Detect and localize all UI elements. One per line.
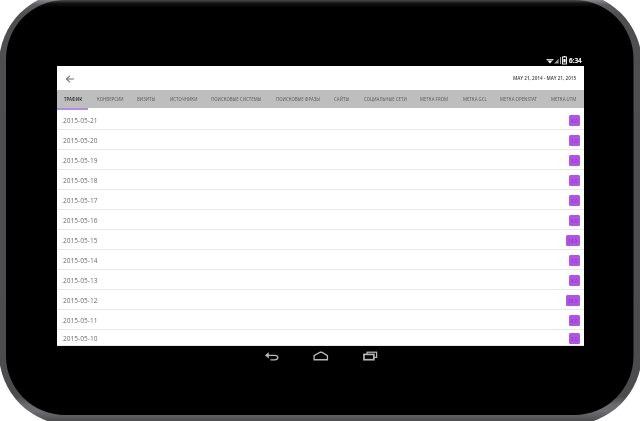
button[interactable]: МЕТКА FROM <box>414 90 455 108</box>
button[interactable]: Recent apps <box>363 351 379 361</box>
staticText: 14.0 <box>568 238 578 244</box>
staticText: 5.0 <box>571 198 578 204</box>
staticText: MAY 21, 2014 - MAY 21, 2015 <box>513 75 577 81</box>
staticText: 7.0 <box>571 258 578 264</box>
staticText: МЕТКА UTM <box>551 96 577 102</box>
staticText: 3.0 <box>571 158 578 164</box>
button[interactable]: КОНВЕРСИИ <box>91 90 130 108</box>
staticText: ВИЗИТЫ <box>137 96 156 102</box>
staticText: МЕТКА OPENSTAT <box>500 96 537 102</box>
button[interactable]: Home <box>313 351 329 361</box>
staticText: 4.0 <box>571 278 578 284</box>
staticText: 1.0 <box>571 138 578 144</box>
staticText: 2015-05-16 <box>63 216 98 225</box>
button[interactable]: 2015-05-13 <box>57 270 584 290</box>
staticText: 2.0 <box>571 178 578 184</box>
button[interactable]: 2015-05-21 <box>57 110 584 130</box>
staticText: 2015-05-11 <box>63 316 98 325</box>
button[interactable]: Back <box>264 351 280 361</box>
button[interactable]: СОЦИАЛЬНЫЕ СЕТИ <box>358 90 413 108</box>
staticText: ТРАФИК <box>64 96 83 102</box>
staticText: ПОИСКОВЫЕ СИСТЕМЫ <box>211 96 262 102</box>
staticText: МЕТКА GCL <box>463 96 487 102</box>
staticText: 2015-05-17 <box>63 196 98 205</box>
staticText: 4.0 <box>571 118 578 124</box>
staticText: 2015-05-12 <box>63 296 98 305</box>
button[interactable]: 2015-05-16 <box>57 210 584 230</box>
button[interactable]: 2015-05-20 <box>57 130 584 150</box>
button[interactable]: 2015-05-12 <box>57 290 584 310</box>
button[interactable]: 2015-05-19 <box>57 150 584 170</box>
staticText: 2015-05-13 <box>63 276 98 285</box>
button[interactable]: МЕТКА GCL <box>457 90 493 108</box>
staticText: 6:34 <box>569 56 582 64</box>
staticText: 6.0 <box>571 218 578 224</box>
staticText: САЙТЫ <box>334 96 350 102</box>
staticText: ПОИСКОВЫЕ ФРАЗЫ <box>276 96 321 102</box>
button[interactable]: 2015-05-14 <box>57 250 584 270</box>
button[interactable]: МЕТКА UTM <box>545 90 583 108</box>
staticText: ИСТОЧНИКИ <box>170 96 198 102</box>
button[interactable]: 2015-05-17 <box>57 190 584 210</box>
staticText: 29.3 <box>568 298 578 304</box>
button[interactable]: 2015-05-18 <box>57 170 584 190</box>
staticText: СОЦИАЛЬНЫЕ СЕТИ <box>364 96 407 102</box>
button[interactable]: САЙТЫ <box>328 90 356 108</box>
button[interactable]: ТРАФИК <box>58 90 89 108</box>
button[interactable]: ПОИСКОВЫЕ СИСТЕМЫ <box>205 90 268 108</box>
button[interactable]: ВИЗИТЫ <box>131 90 162 108</box>
button[interactable]: Navigate up <box>62 71 78 87</box>
button[interactable]: 2015-05-15 <box>57 230 584 250</box>
staticText: 2015-05-20 <box>63 136 98 145</box>
staticText: МЕТКА FROM <box>420 96 449 102</box>
staticText: 2015-05-10 <box>63 334 98 343</box>
staticText: 3.0 <box>571 336 578 342</box>
button[interactable]: ИСТОЧНИКИ <box>164 90 204 108</box>
button[interactable]: 2015-05-11 <box>57 310 584 330</box>
staticText: 2015-05-18 <box>63 176 98 185</box>
staticText: 2015-05-19 <box>63 156 98 165</box>
staticText: 2015-05-14 <box>63 256 98 265</box>
staticText: 2015-05-21 <box>63 116 98 125</box>
staticText: 8.0 <box>571 318 578 324</box>
button[interactable]: 2015-05-10 <box>57 330 584 346</box>
button[interactable]: ПОИСКОВЫЕ ФРАЗЫ <box>270 90 327 108</box>
button[interactable]: МЕТКА OPENSTAT <box>494 90 543 108</box>
staticText: 2015-05-15 <box>63 236 98 245</box>
staticText: КОНВЕРСИИ <box>97 96 124 102</box>
